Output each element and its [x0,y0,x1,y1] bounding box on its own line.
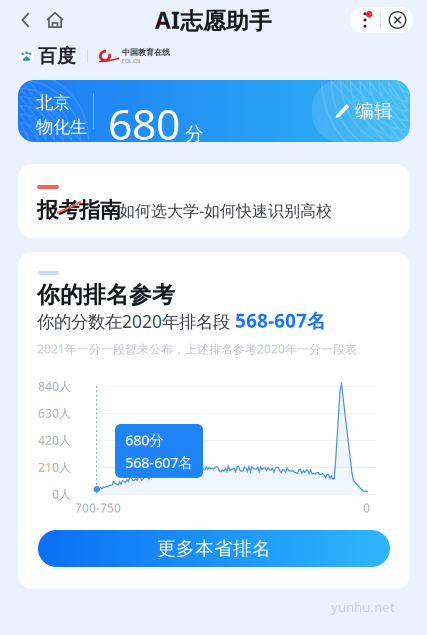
staticText: 840人 [38,378,71,394]
button[interactable]: 编辑 [319,80,409,142]
staticText: 你的分数在2020年排名段 [37,310,235,333]
staticText: AI志愿助手 [155,5,272,35]
button[interactable]: 更多本省排名 [38,530,390,567]
staticText: 报考指南 [37,197,121,223]
staticText: 分 [185,122,204,145]
staticText: 物化生 [36,116,87,138]
staticText: EOL.CN [122,57,140,64]
button[interactable]: Home [38,4,72,36]
staticText: 700-750 [75,500,121,516]
staticText: 568-607名 [125,452,193,472]
staticText: 更多本省排名 [157,537,271,560]
staticText: 420人 [38,432,71,448]
staticText: 568-607名 [235,308,326,333]
button[interactable]: Back [14,4,38,36]
staticText: 0 [363,500,370,516]
button[interactable]: 报考指南 [18,164,410,238]
staticText: 编辑 [355,99,393,122]
button[interactable]: More options [350,7,380,33]
staticText: 如何选大学-如何快速识别高校 [119,200,332,221]
staticText: 2021年一分一段暂未公布，上述排名参考2020年一分一段表 [37,341,357,357]
staticText: 630人 [38,405,71,421]
staticText: 680分 [125,430,164,449]
staticText: 0人 [52,486,71,502]
staticText: 中国教育在线 [122,47,170,57]
staticText: 北京 [36,92,70,113]
staticText: 百度 [38,44,76,67]
button[interactable]: Close [381,7,414,33]
staticText: yunhu.net [331,598,395,616]
staticText: 680 [108,95,180,152]
staticText: 210人 [38,459,71,475]
staticText: 你的排名参考 [37,281,175,309]
